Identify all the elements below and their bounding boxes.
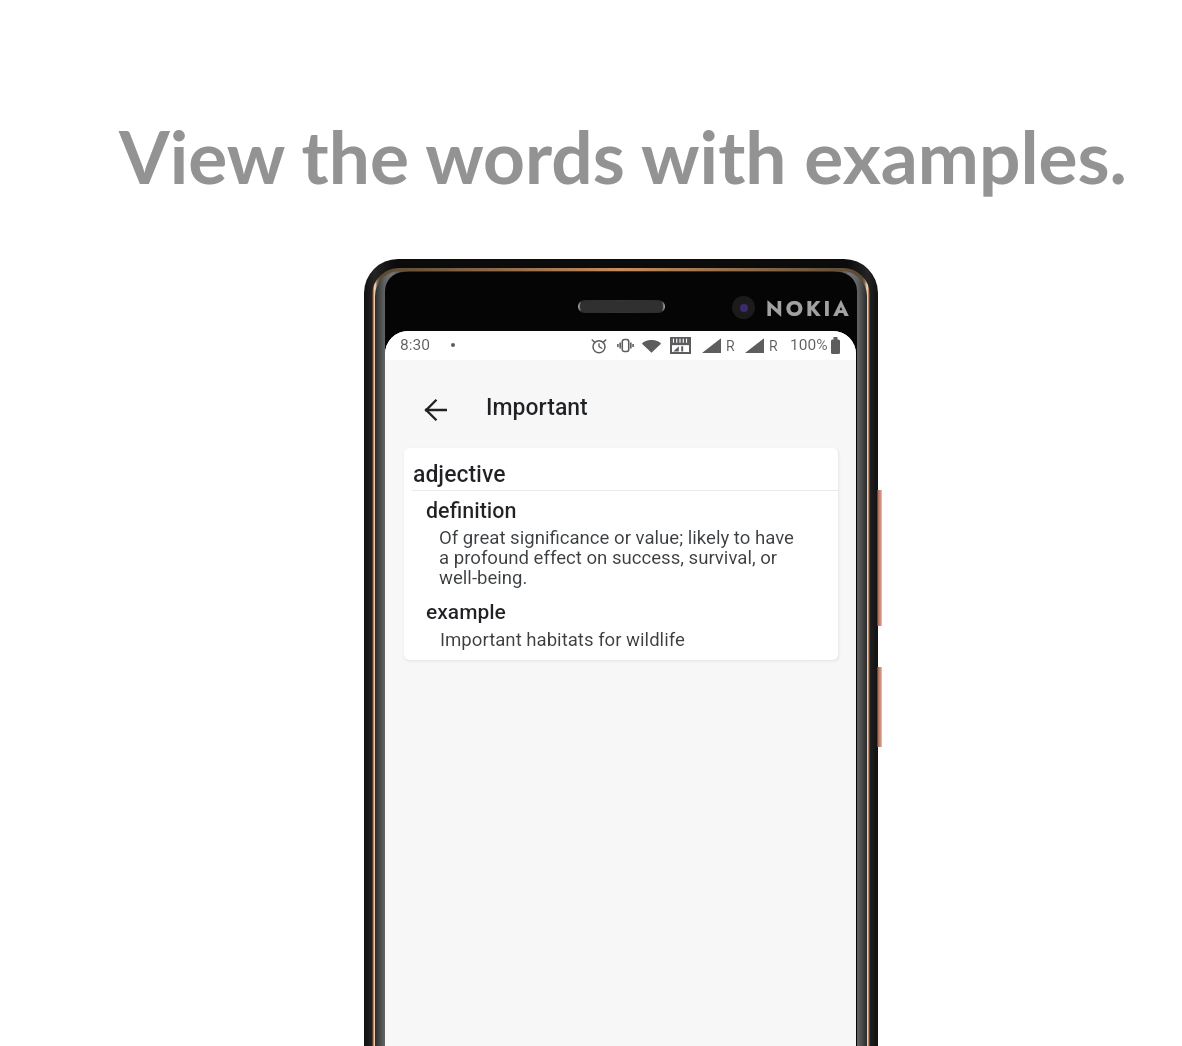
- staticText: R: [769, 338, 778, 354]
- staticText: 8:30: [400, 336, 430, 354]
- staticText: 100%: [790, 336, 828, 354]
- staticText: Important habitats for wildlife: [440, 629, 685, 651]
- staticText: Of great significance or value; likely t…: [439, 527, 804, 588]
- button[interactable]: adjective: [404, 448, 838, 660]
- staticText: View the words with examples.: [32, 112, 1182, 200]
- staticText: definition: [426, 498, 517, 523]
- staticText: Important: [486, 394, 588, 421]
- staticText: NOKIA: [766, 294, 852, 324]
- button[interactable]: Back: [417, 391, 455, 429]
- staticText: adjective: [413, 461, 506, 488]
- staticText: example: [426, 600, 506, 625]
- staticText: R: [726, 338, 735, 354]
